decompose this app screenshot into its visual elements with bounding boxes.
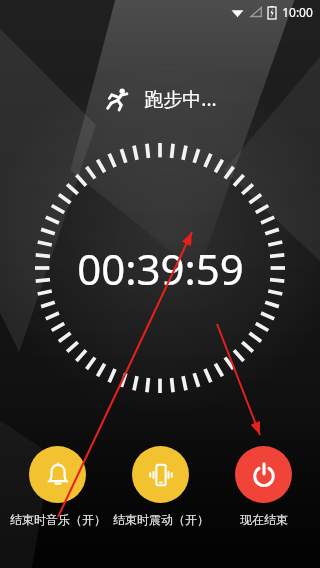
staticText: 10:00 [282, 4, 313, 20]
staticText: 结束时音乐（开） [10, 512, 106, 527]
staticText: 现在结束 [240, 512, 288, 527]
button[interactable]: End now [212, 446, 315, 527]
staticText: 跑步中... [144, 86, 217, 112]
staticText: 结束时震动（开） [113, 512, 209, 527]
button[interactable]: End music on [6, 446, 109, 527]
button[interactable]: End vibrate on [109, 446, 212, 527]
staticText: 00:39:59 [77, 240, 244, 297]
